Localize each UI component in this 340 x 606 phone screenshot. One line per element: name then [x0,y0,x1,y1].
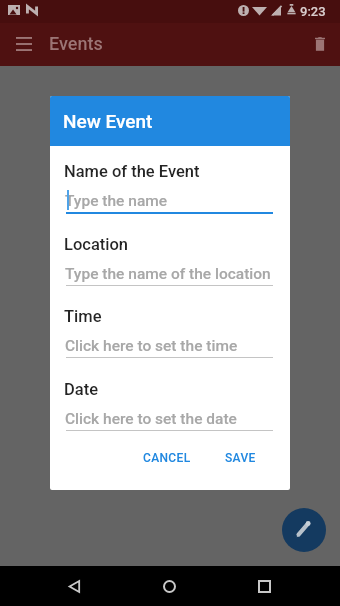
button[interactable]: Date [66,380,273,431]
button[interactable]: Delete [304,28,336,60]
staticText: Name of the Event [64,162,200,181]
staticText: Type the name of the location [65,265,271,283]
staticText: Click here to set the date [65,410,237,428]
staticText: Time [64,307,102,326]
staticText: SAVE [225,451,256,465]
button[interactable]: SAVE [217,444,264,472]
staticText: Type the name [65,192,168,210]
staticText: CANCEL [143,451,191,465]
button[interactable]: Back [58,566,90,606]
button[interactable]: Open navigation drawer [8,28,40,60]
staticText: Click here to set the time [65,337,238,355]
button[interactable]: Recent apps [248,566,280,606]
staticText: Events [49,33,103,54]
staticText: Date [64,380,98,399]
button[interactable]: Name of the Event [66,162,273,213]
button[interactable]: Add event [282,508,326,552]
button[interactable]: Time [66,307,273,358]
button[interactable]: CANCEL [135,444,199,472]
staticText: 9:23 [300,4,326,19]
staticText: New Event [63,110,153,132]
staticText: Location [64,235,129,254]
button[interactable]: Home [153,566,185,606]
button[interactable]: Location [66,235,273,286]
